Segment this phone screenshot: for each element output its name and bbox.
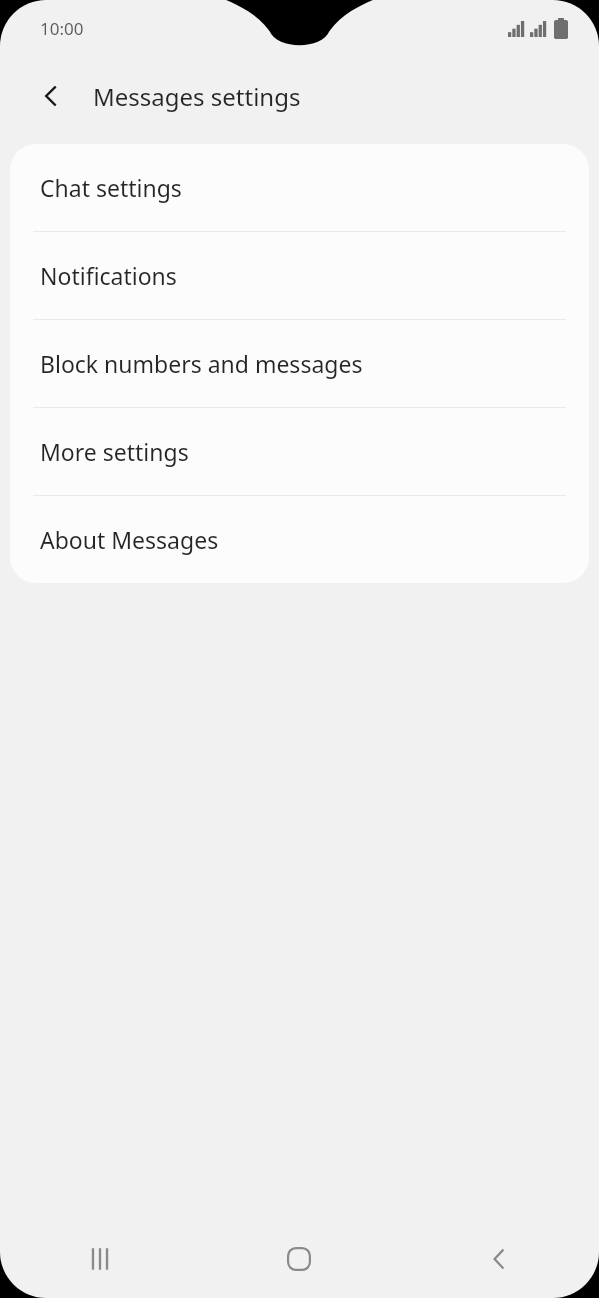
button[interactable]: Recent apps bbox=[0, 1220, 199, 1298]
staticText: More settings bbox=[40, 436, 189, 467]
staticText: Block numbers and messages bbox=[40, 348, 363, 379]
button[interactable]: More settings bbox=[10, 408, 589, 495]
button[interactable]: Chat settings bbox=[10, 144, 589, 231]
staticText: Messages settings bbox=[93, 80, 301, 113]
button[interactable]: Back bbox=[27, 72, 75, 120]
staticText: Chat settings bbox=[40, 172, 182, 203]
button[interactable]: Notifications bbox=[10, 232, 589, 319]
staticText: About Messages bbox=[40, 524, 219, 555]
button[interactable]: Home bbox=[199, 1220, 399, 1298]
staticText: 10:00 bbox=[40, 17, 84, 40]
button[interactable]: About Messages bbox=[10, 496, 589, 583]
staticText: Notifications bbox=[40, 260, 177, 291]
button[interactable]: Block numbers and messages bbox=[10, 320, 589, 407]
button[interactable]: Back bbox=[399, 1220, 599, 1298]
